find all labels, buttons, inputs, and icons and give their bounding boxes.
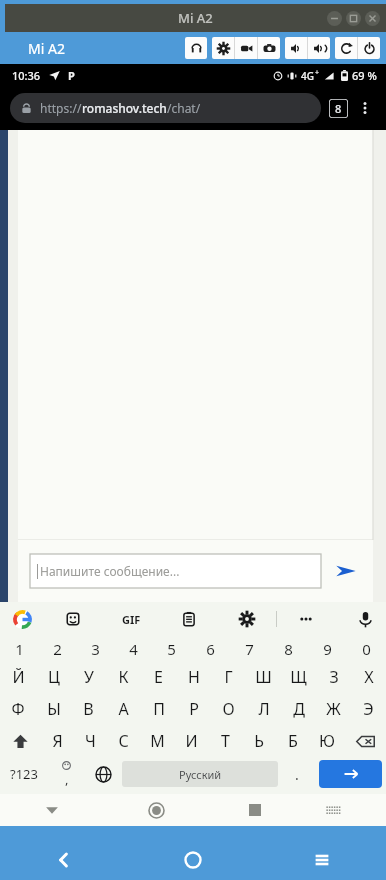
button[interactable]: 9 xyxy=(308,636,347,661)
button[interactable]: More options xyxy=(354,97,376,119)
button[interactable]: Voice input xyxy=(344,602,386,636)
staticText: Й xyxy=(12,666,25,688)
staticText: М xyxy=(150,730,165,752)
button[interactable]: Ь xyxy=(242,725,276,757)
button[interactable]: Русский xyxy=(122,761,278,787)
button[interactable]: Ж xyxy=(316,693,351,725)
button[interactable]: В xyxy=(71,693,106,725)
staticText: Ж xyxy=(326,698,341,720)
button[interactable]: Напишите сообщение... xyxy=(30,554,321,588)
button[interactable]: У xyxy=(71,661,106,693)
button[interactable]: Recent apps xyxy=(257,840,386,880)
button[interactable]: https:// xyxy=(10,93,321,123)
button[interactable]: Р xyxy=(176,693,211,725)
staticText: 69 % xyxy=(352,68,377,83)
button[interactable]: С xyxy=(107,725,140,757)
button[interactable]: Ю xyxy=(310,725,344,757)
button[interactable]: К xyxy=(106,661,141,693)
staticText: /chat/ xyxy=(167,100,201,116)
button[interactable]: Keyboard settings xyxy=(218,602,276,636)
button[interactable]: Google search xyxy=(0,602,44,636)
button[interactable]: 2 xyxy=(38,636,76,661)
button[interactable]: Settings xyxy=(212,37,234,59)
staticText: . xyxy=(295,765,299,784)
button[interactable]: Record video xyxy=(235,37,257,59)
button[interactable]: З xyxy=(316,661,351,693)
button[interactable]: 6 xyxy=(191,636,230,661)
staticText: Н xyxy=(188,666,200,688)
staticText: О xyxy=(222,698,235,720)
button[interactable]: Switch keyboard xyxy=(301,794,366,826)
button[interactable]: Screenshot xyxy=(258,37,280,59)
button[interactable]: ?123 xyxy=(0,757,48,791)
button[interactable]: 4 xyxy=(114,636,152,661)
staticText: GIF xyxy=(122,612,141,627)
button[interactable]: Home xyxy=(128,840,257,880)
button[interactable]: Close xyxy=(365,11,380,26)
button[interactable]: Home xyxy=(104,794,209,826)
button[interactable]: О xyxy=(211,693,246,725)
button[interactable]: Б xyxy=(276,725,310,757)
button[interactable]: 5 xyxy=(152,636,191,661)
button[interactable]: Т xyxy=(208,725,242,757)
button[interactable]: Headphones xyxy=(185,37,207,59)
staticText: 0 xyxy=(362,639,371,659)
button[interactable]: Change language xyxy=(85,757,122,791)
staticText: Ы xyxy=(47,698,61,720)
button[interactable]: Clipboard xyxy=(160,602,218,636)
button[interactable]: Volume up xyxy=(308,37,330,59)
button[interactable]: Д xyxy=(281,693,316,725)
button[interactable]: Minimise xyxy=(327,11,342,26)
button[interactable]: Ц xyxy=(36,661,71,693)
button[interactable]: Maximise xyxy=(346,11,361,26)
button[interactable]: Ч xyxy=(74,725,107,757)
button[interactable]: Э xyxy=(351,693,386,725)
button[interactable]: Power xyxy=(358,37,380,59)
button[interactable]: Enter xyxy=(319,760,382,788)
button[interactable]: GIF xyxy=(102,602,160,636)
staticText: Ш xyxy=(255,666,272,688)
button[interactable]: Л xyxy=(246,693,281,725)
staticText: Л xyxy=(258,698,270,720)
button[interactable]: Recent apps xyxy=(209,794,301,826)
button[interactable]: Backspace xyxy=(344,725,386,757)
button[interactable]: Reload xyxy=(335,37,357,59)
button[interactable]: Я xyxy=(41,725,74,757)
button[interactable]: Back xyxy=(0,840,128,880)
button[interactable]: 3 xyxy=(76,636,114,661)
button[interactable]: И xyxy=(174,725,208,757)
button[interactable]: Hide keyboard xyxy=(0,794,104,826)
staticText: 4 xyxy=(129,639,138,659)
staticText: З xyxy=(329,666,339,688)
staticText: 8 xyxy=(335,101,342,116)
button[interactable]: Г xyxy=(211,661,246,693)
staticText: 8 xyxy=(284,639,293,659)
button[interactable]: 1 xyxy=(0,636,38,661)
button[interactable]: Shift xyxy=(0,725,41,757)
button[interactable]: Н xyxy=(176,661,211,693)
button[interactable]: Щ xyxy=(281,661,316,693)
button[interactable]: Ш xyxy=(246,661,281,693)
staticText: Т xyxy=(221,730,230,752)
staticText: https:// xyxy=(40,100,82,116)
button[interactable]: 8 xyxy=(269,636,308,661)
button[interactable]: Stickers xyxy=(44,602,102,636)
button[interactable]: А xyxy=(106,693,141,725)
button[interactable]: Ы xyxy=(36,693,71,725)
button[interactable]: Volume down xyxy=(285,37,307,59)
button[interactable]: Ф xyxy=(0,693,36,725)
button[interactable]: Send message xyxy=(331,556,361,586)
staticText: И xyxy=(185,730,198,752)
button[interactable]: 7 xyxy=(230,636,269,661)
button[interactable]: 0 xyxy=(347,636,386,661)
button[interactable]: П xyxy=(141,693,176,725)
button[interactable]: М xyxy=(140,725,174,757)
button[interactable]: . xyxy=(278,757,315,791)
staticText: Д xyxy=(293,698,305,720)
button[interactable]: Й xyxy=(0,661,36,693)
button[interactable]: Switch tabs, 8 open xyxy=(329,99,348,118)
button[interactable]: Emoji and comma xyxy=(48,757,85,791)
button[interactable]: Е xyxy=(141,661,176,693)
button[interactable]: More xyxy=(277,602,335,636)
button[interactable]: Х xyxy=(351,661,386,693)
